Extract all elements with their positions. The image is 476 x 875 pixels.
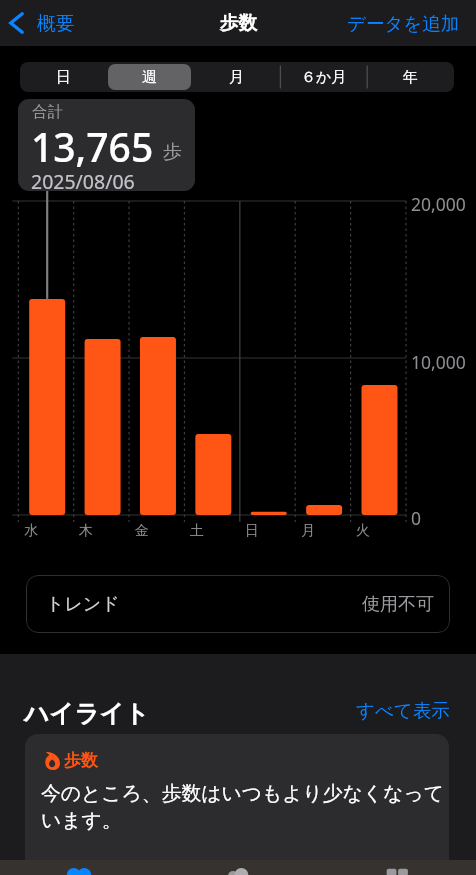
staticText: 今のところ、歩数はいつもより少なくなっています。: [41, 781, 445, 833]
staticText: 13,765: [31, 120, 154, 173]
staticText: 歩: [163, 140, 182, 164]
staticText: 2025/08/06: [31, 168, 135, 191]
button[interactable]: 月: [195, 64, 278, 90]
staticText: 日: [56, 68, 71, 87]
staticText: ハイライト: [24, 698, 150, 729]
staticText: 金: [135, 522, 149, 540]
staticText: 月: [301, 522, 315, 540]
staticText: 20,000: [411, 192, 466, 216]
button[interactable]: 概要: [0, 860, 158, 875]
button[interactable]: ６か月: [282, 64, 365, 90]
staticText: 年: [403, 68, 418, 87]
button[interactable]: トレンド: [26, 575, 450, 633]
button[interactable]: ブラウズ: [317, 860, 476, 875]
button[interactable]: 週: [108, 64, 191, 90]
staticText: 歩数: [64, 750, 98, 771]
staticText: データを追加: [347, 12, 460, 35]
button[interactable]: 概要: [9, 0, 74, 46]
staticText: 水: [24, 522, 38, 540]
staticText: すべて表示: [356, 699, 450, 722]
button[interactable]: 共有: [158, 860, 317, 875]
staticText: ６か月: [301, 68, 347, 87]
staticText: 火: [356, 522, 370, 540]
staticText: 使用不可: [362, 593, 434, 616]
staticText: 概要: [37, 12, 74, 35]
staticText: 日: [245, 522, 259, 540]
staticText: 週: [142, 68, 157, 87]
staticText: 土: [190, 522, 204, 540]
staticText: トレンド: [46, 593, 120, 616]
staticText: 月: [229, 68, 244, 87]
staticText: 木: [79, 522, 93, 540]
staticText: 0: [411, 506, 422, 530]
button[interactable]: 年: [369, 64, 452, 90]
staticText: 合計: [32, 102, 63, 122]
button[interactable]: データを追加: [347, 0, 460, 46]
button[interactable]: 日: [22, 64, 104, 90]
staticText: 歩数: [220, 11, 257, 34]
staticText: 10,000: [411, 350, 466, 374]
button[interactable]: すべて表示: [330, 695, 450, 725]
button[interactable]: 歩数: [25, 734, 449, 875]
